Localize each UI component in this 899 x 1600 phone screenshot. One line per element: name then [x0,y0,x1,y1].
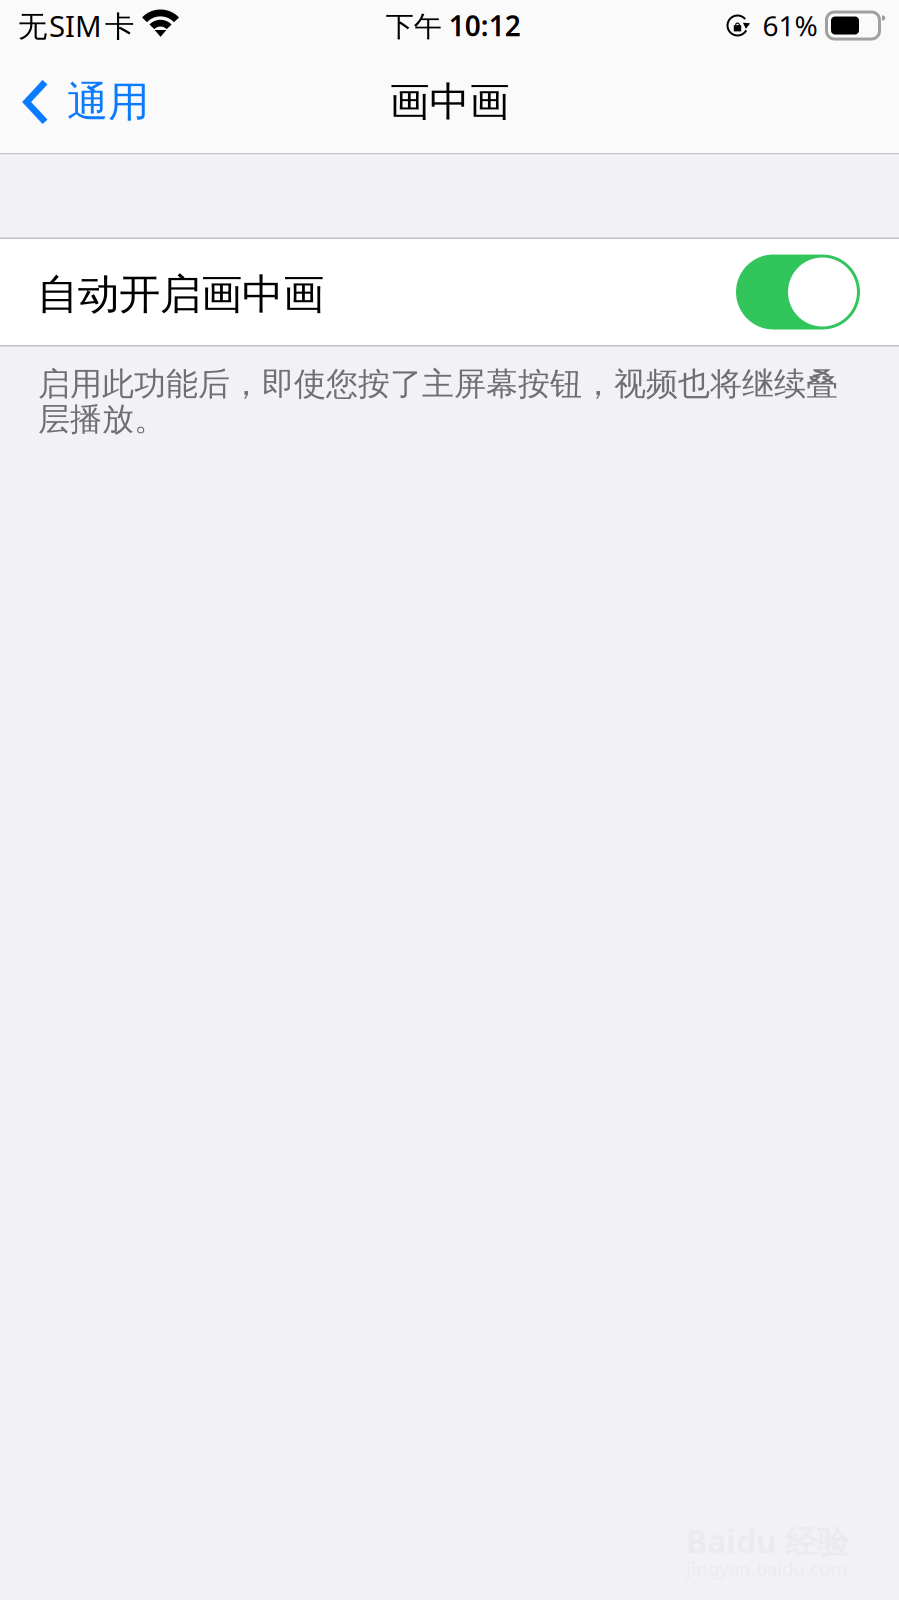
button[interactable]: 通用 [0,51,165,153]
staticText: 自动开启画中画 [37,269,324,320]
staticText: 61% [762,7,817,44]
staticText: 启用此功能后，即使您按了主屏幕按钮，视频也将继续叠层播放。 [38,364,838,439]
staticText: 画中画 [389,77,509,126]
button[interactable]: 自动开启画中画 [736,254,860,329]
staticText: 下午 10:12 [386,7,521,44]
staticText: 通用 [67,77,149,127]
staticText: 无 SIM 卡 [18,6,134,45]
